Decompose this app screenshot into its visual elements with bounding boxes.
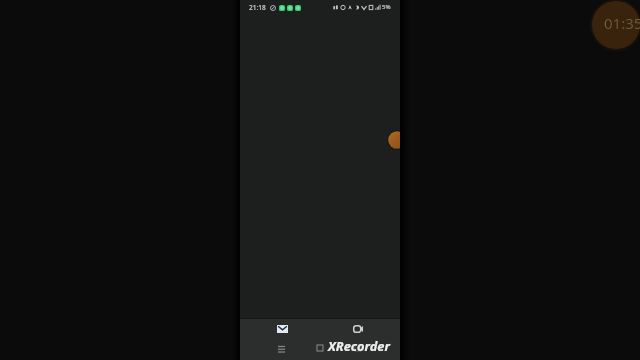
button[interactable]: Recents xyxy=(352,342,364,354)
staticText: 01:35 xyxy=(604,13,640,33)
staticText: 21:18 xyxy=(249,3,266,12)
staticText: XRecorder xyxy=(328,337,390,354)
button[interactable]: Messages xyxy=(268,321,296,337)
button[interactable]: Menu xyxy=(275,343,287,355)
button[interactable]: Recording controls xyxy=(387,130,400,150)
button[interactable]: Home xyxy=(314,342,326,354)
staticText: 5% xyxy=(382,3,391,11)
button[interactable]: Video call xyxy=(344,321,372,337)
